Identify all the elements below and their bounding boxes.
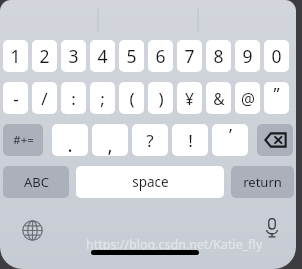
button[interactable]: 9 <box>235 40 260 72</box>
staticText: / <box>41 87 48 110</box>
staticText: : <box>71 87 76 110</box>
staticText: - <box>13 87 19 110</box>
button[interactable]: Switch keyboard language <box>17 215 47 245</box>
staticText: 6 <box>155 44 166 68</box>
button[interactable]: ( <box>119 82 144 114</box>
staticText: . <box>67 132 73 156</box>
staticText: & <box>213 88 225 109</box>
button[interactable]: space <box>76 166 224 198</box>
staticText: ; <box>100 87 105 110</box>
button[interactable]: Dictation <box>257 213 287 243</box>
button[interactable]: 8 <box>206 40 231 72</box>
staticText: return <box>243 173 282 191</box>
staticText: ) <box>158 87 164 110</box>
staticText: ? <box>146 129 154 152</box>
staticText: https://blog.csdn.net/Katie_fly <box>86 236 263 253</box>
button[interactable]: 5 <box>119 40 144 72</box>
button[interactable]: #+= <box>3 124 43 156</box>
button[interactable]: ; <box>90 82 115 114</box>
button[interactable]: return <box>231 166 294 198</box>
staticText: space <box>132 173 169 191</box>
button[interactable]: - <box>3 82 28 114</box>
staticText: ABC <box>24 173 49 191</box>
staticText: ’ <box>229 124 232 146</box>
button[interactable]: ” <box>264 82 289 114</box>
button[interactable]: 1 <box>3 40 28 72</box>
button[interactable]: ¥ <box>177 82 202 114</box>
staticText: 4 <box>97 44 108 68</box>
button[interactable]: ABC <box>3 166 69 198</box>
button[interactable]: / <box>32 82 57 114</box>
button[interactable]: ) <box>148 82 173 114</box>
button[interactable]: ! <box>172 124 208 156</box>
staticText: @ <box>241 88 255 109</box>
staticText: 0 <box>271 44 282 68</box>
button[interactable]: , <box>92 124 128 156</box>
button[interactable]: @ <box>235 82 260 114</box>
staticText: ! <box>188 129 193 152</box>
staticText: 1 <box>10 44 21 68</box>
button[interactable]: 6 <box>148 40 173 72</box>
staticText: ¥ <box>185 88 194 109</box>
staticText: 7 <box>184 44 195 68</box>
staticText: 5 <box>126 44 137 68</box>
button[interactable]: Backspace <box>257 124 293 156</box>
staticText: #+= <box>13 132 34 148</box>
staticText: ” <box>273 82 280 105</box>
staticText: , <box>107 132 113 156</box>
button[interactable]: ? <box>132 124 168 156</box>
button[interactable]: 4 <box>90 40 115 72</box>
staticText: ( <box>129 87 135 110</box>
button[interactable]: 2 <box>32 40 57 72</box>
button[interactable]: : <box>61 82 86 114</box>
staticText: 2 <box>39 44 50 68</box>
button[interactable]: . <box>52 124 88 156</box>
staticText: 8 <box>213 44 224 68</box>
button[interactable]: & <box>206 82 231 114</box>
staticText: 9 <box>242 44 253 68</box>
button[interactable]: 3 <box>61 40 86 72</box>
button[interactable]: 7 <box>177 40 202 72</box>
staticText: 3 <box>68 44 79 68</box>
button[interactable]: ’ <box>212 124 248 156</box>
button[interactable]: 0 <box>264 40 289 72</box>
